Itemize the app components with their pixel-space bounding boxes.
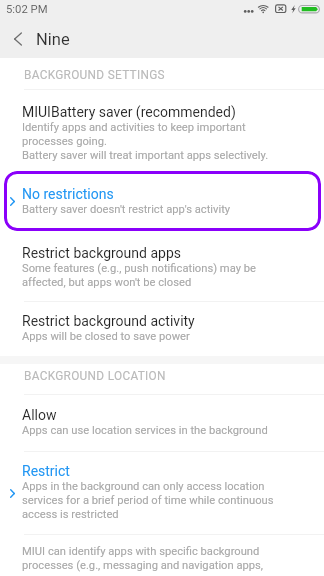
staticText: Identify apps and activities to keep imp… <box>22 121 269 161</box>
button[interactable]: MIUIBattery saver (recommended) <box>0 90 324 172</box>
button[interactable]: Restrict <box>0 452 324 534</box>
staticText: Apps will be closed to save power <box>22 330 190 343</box>
button[interactable]: No restrictions <box>0 172 324 231</box>
button[interactable] <box>4 171 321 231</box>
staticText: Some features (e.g., push notifications)… <box>22 262 256 288</box>
staticText: BACKGROUND SETTINGS <box>24 68 165 82</box>
staticText: Restrict background activity <box>22 313 195 329</box>
staticText: MIUIBattery saver (recommended) <box>22 104 236 120</box>
staticText: Battery saver doesn't restrict app's act… <box>22 203 231 216</box>
button[interactable]: Back <box>0 21 36 57</box>
staticText: Nine <box>36 30 70 49</box>
staticText: 5:02 PM <box>6 3 48 16</box>
staticText: BACKGROUND LOCATION <box>24 369 166 383</box>
staticText: Restrict background apps <box>22 245 181 261</box>
button[interactable]: Restrict background apps <box>0 231 324 301</box>
staticText: Allow <box>22 407 57 423</box>
staticText: No restrictions <box>22 186 114 202</box>
staticText: MIUI can identify apps with specific bac… <box>22 545 264 571</box>
staticText: Restrict <box>22 463 70 479</box>
button[interactable]: Allow <box>0 395 324 451</box>
button[interactable]: Restrict background activity <box>0 302 324 356</box>
staticText: Apps can use location services in the ba… <box>22 424 268 437</box>
staticText: Apps in the background can only access l… <box>22 480 274 520</box>
